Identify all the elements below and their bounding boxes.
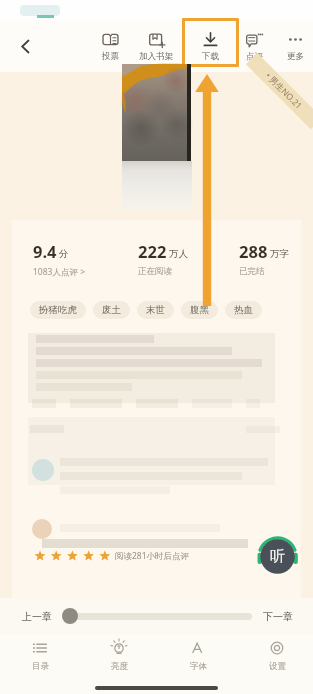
staticText: 字体 — [190, 661, 207, 672]
staticText: 点评 — [246, 51, 263, 62]
staticText: 1083人点评 > — [33, 266, 86, 278]
staticText: 万人 — [169, 248, 188, 260]
staticText: 288 — [239, 240, 268, 262]
button[interactable]: Back — [8, 20, 42, 72]
button[interactable]: 投票 — [88, 20, 132, 72]
staticText: 加入书架 — [139, 51, 173, 62]
button[interactable]: 设置 — [251, 640, 303, 678]
staticText: 热血 — [234, 304, 253, 316]
staticText: 更多 — [287, 51, 304, 62]
staticText: 亮度 — [111, 661, 128, 672]
staticText: 投票 — [102, 51, 119, 62]
button[interactable]: 更多 — [273, 20, 313, 72]
staticText: 分 — [59, 248, 69, 260]
staticText: 设置 — [269, 661, 286, 672]
staticText: 下一章 — [263, 610, 293, 623]
button[interactable]: 下一章 — [263, 598, 293, 634]
staticText: 扮猪吃虎 — [39, 304, 77, 316]
button[interactable]: 下载 — [188, 20, 232, 72]
button[interactable]: 腹黑 — [181, 301, 218, 319]
staticText: 阅读281小时后点评 — [115, 550, 190, 562]
staticText: 听 — [270, 547, 285, 566]
staticText: 已完结 — [239, 266, 265, 277]
staticText: 末世 — [146, 304, 165, 316]
button[interactable]: 字体 — [172, 640, 224, 678]
staticText: 下载 — [202, 51, 219, 62]
button[interactable] — [62, 608, 78, 624]
button[interactable]: 目录 — [14, 640, 66, 678]
button[interactable]: Listen — [257, 536, 298, 577]
button[interactable]: 末世 — [137, 301, 174, 319]
button[interactable]: 加入书架 — [134, 20, 178, 72]
staticText: 正在阅读 — [138, 266, 172, 277]
staticText: • 男生NO.21 — [263, 70, 305, 112]
staticText: 9.4 — [33, 240, 57, 262]
button[interactable]: 上一章 — [22, 598, 52, 634]
button[interactable]: 点评 — [232, 20, 276, 72]
staticText: 废土 — [102, 304, 121, 316]
staticText: 上一章 — [22, 610, 52, 623]
staticText: 腹黑 — [190, 304, 209, 316]
button[interactable]: 热血 — [225, 301, 262, 319]
staticText: 万字 — [270, 248, 289, 260]
button[interactable]: 废土 — [93, 301, 130, 319]
button[interactable]: 扮猪吃虎 — [30, 301, 86, 319]
staticText: 目录 — [32, 661, 49, 672]
button[interactable]: 亮度 — [93, 640, 145, 678]
staticText: 222 — [138, 240, 167, 262]
